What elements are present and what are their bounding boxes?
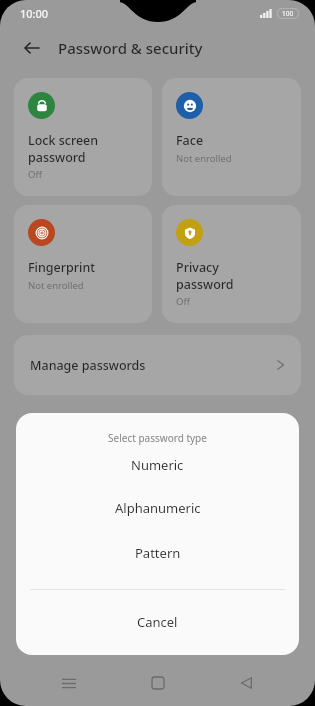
staticText: Password & security	[58, 38, 203, 58]
button[interactable]: Fingerprint	[14, 205, 152, 323]
staticText: Not enrolled	[176, 152, 232, 165]
staticText: Off	[176, 295, 190, 308]
staticText: Select password type	[16, 431, 299, 445]
staticText: Cancel	[137, 613, 178, 631]
staticText: Not enrolled	[28, 279, 84, 292]
button[interactable]: Lock screen password	[14, 78, 152, 196]
staticText: Pattern	[135, 544, 181, 562]
button[interactable]: Alphanumeric	[16, 485, 299, 530]
staticText: Off	[28, 168, 42, 181]
button[interactable]: Back	[16, 32, 48, 64]
staticText: Face	[176, 132, 204, 149]
staticText: Manage passwords	[30, 357, 276, 374]
staticText: 100	[282, 9, 294, 18]
staticText: Fingerprint	[28, 259, 96, 276]
staticText: Alphanumeric	[115, 499, 201, 517]
staticText: Numeric	[131, 456, 184, 474]
button[interactable]: Cancel	[16, 590, 299, 654]
staticText: Privacy password	[176, 259, 234, 292]
staticText: 10:00	[20, 6, 49, 21]
button[interactable]: Face	[162, 78, 301, 196]
button[interactable]: Back	[226, 663, 266, 703]
button[interactable]: Manage passwords	[14, 335, 301, 395]
button[interactable]: Pattern	[16, 530, 299, 575]
button[interactable]: Recents	[49, 663, 89, 703]
button[interactable]: Home	[138, 663, 178, 703]
button[interactable]: Privacy password	[162, 205, 301, 323]
staticText: Lock screen password	[28, 132, 99, 165]
button[interactable]: Numeric	[16, 445, 299, 485]
